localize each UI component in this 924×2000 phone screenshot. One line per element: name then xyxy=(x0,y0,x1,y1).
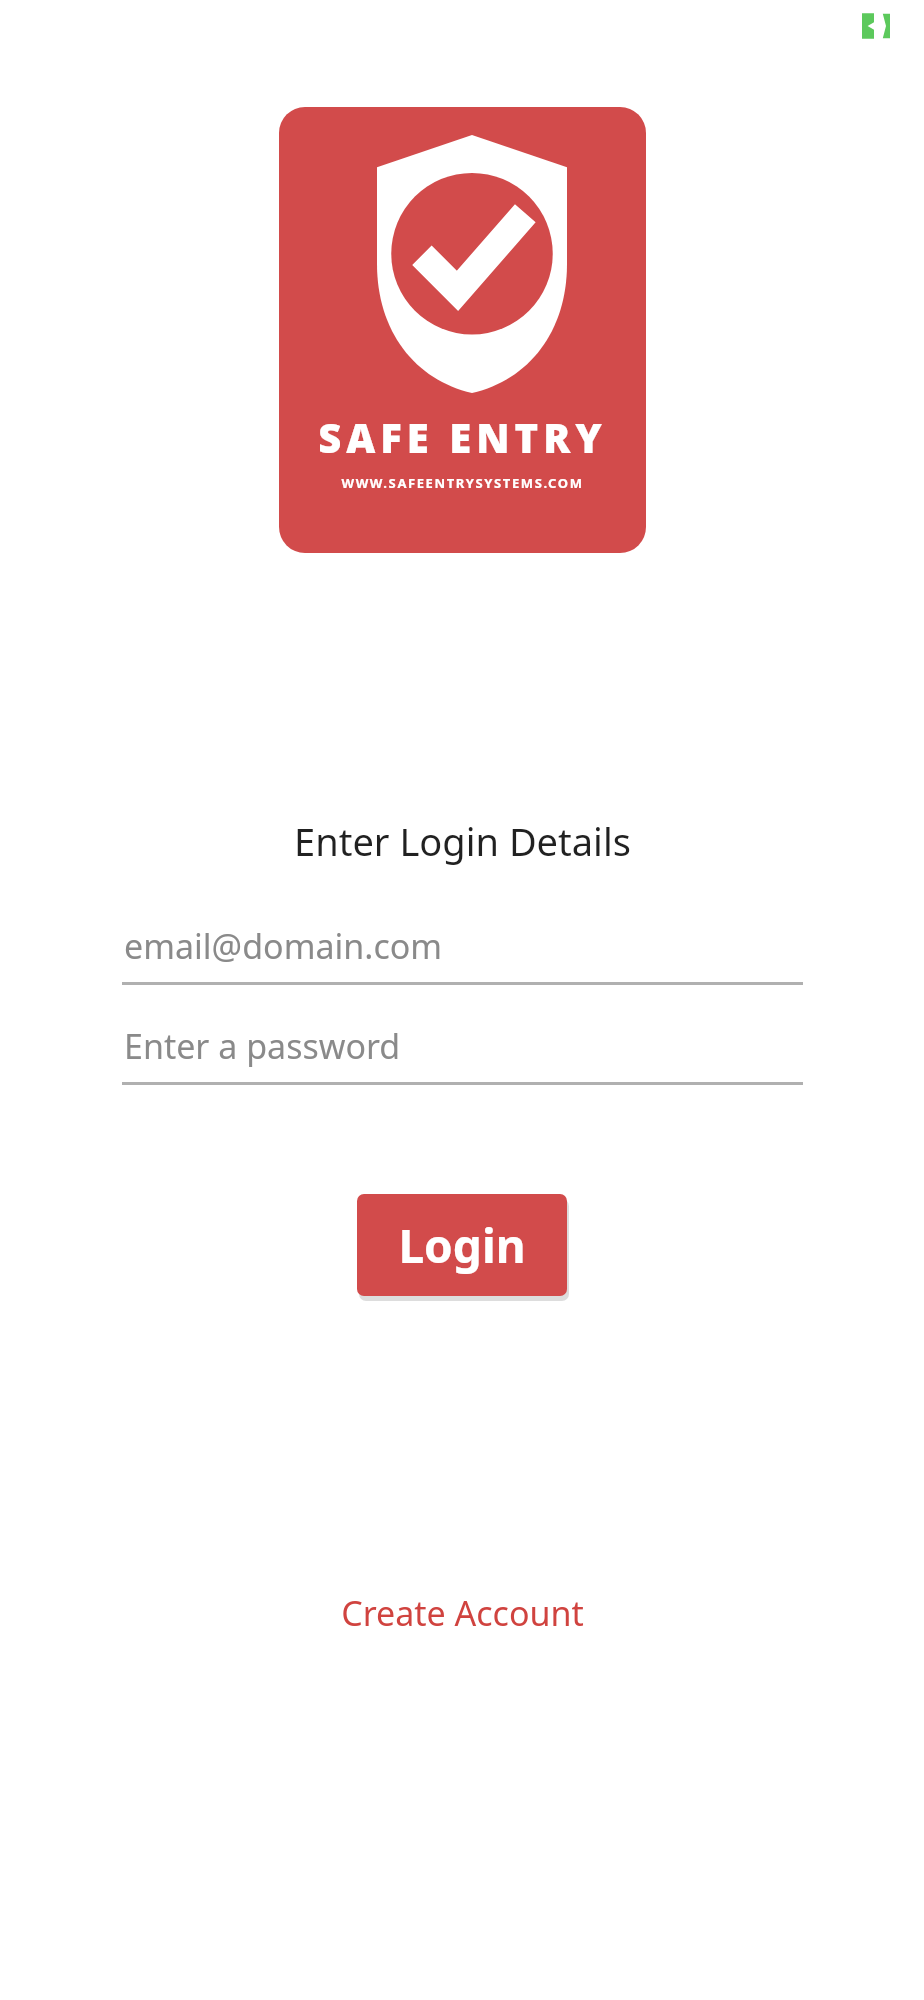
staticText: Login xyxy=(398,1214,526,1277)
staticText: Enter a password xyxy=(124,1023,401,1069)
staticText: SAFE ENTRY xyxy=(318,410,607,464)
button[interactable]: Login xyxy=(357,1194,567,1296)
staticText: WWW.SAFEENTRYSYSTEMS.COM xyxy=(341,474,584,492)
staticText: Enter Login Details xyxy=(294,815,631,867)
button[interactable]: Create Account xyxy=(321,1578,604,1648)
staticText: email@domain.com xyxy=(124,923,443,969)
button[interactable]: Enter a password xyxy=(122,1007,803,1085)
staticText: Create Account xyxy=(341,1590,584,1636)
button[interactable]: email@domain.com xyxy=(122,907,803,985)
other: Sync status xyxy=(858,10,898,42)
